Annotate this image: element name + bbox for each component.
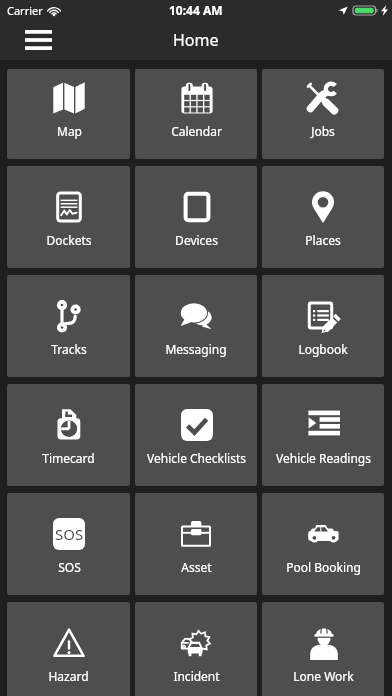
staticText: Vehicle Checklists xyxy=(147,450,246,466)
staticText: 10:44 AM xyxy=(169,2,223,18)
button[interactable]: SOS xyxy=(7,493,130,595)
button[interactable]: Calendar xyxy=(135,69,257,159)
button[interactable]: Incident xyxy=(135,602,257,696)
staticText: Hazard xyxy=(48,668,89,684)
button[interactable]: Tracks xyxy=(7,275,130,377)
staticText: Map xyxy=(57,123,82,139)
button[interactable]: Messaging xyxy=(135,275,257,377)
button[interactable]: Logbook xyxy=(262,275,384,377)
staticText: Pool Booking xyxy=(286,559,361,575)
staticText: Vehicle Readings xyxy=(276,450,371,466)
button[interactable]: Open navigation menu xyxy=(12,20,64,60)
staticText: Lone Work xyxy=(293,668,354,684)
button[interactable]: Jobs xyxy=(262,69,384,159)
button[interactable]: Places xyxy=(262,166,384,268)
staticText: Carrier xyxy=(7,3,43,18)
button[interactable]: Vehicle Readings xyxy=(262,384,384,486)
button[interactable]: Lone Work xyxy=(262,602,384,696)
button[interactable]: Timecard xyxy=(7,384,130,486)
staticText: Messaging xyxy=(165,341,227,357)
button[interactable]: Devices xyxy=(135,166,257,268)
staticText: Dockets xyxy=(46,232,92,248)
staticText: Logbook xyxy=(298,341,348,357)
button[interactable]: Hazard xyxy=(7,602,130,696)
button[interactable]: Asset xyxy=(135,493,257,595)
staticText: SOS xyxy=(55,524,84,544)
staticText: Places xyxy=(305,232,341,248)
staticText: SOS xyxy=(58,559,81,575)
staticText: Timecard xyxy=(42,450,95,466)
staticText: Tracks xyxy=(51,341,87,357)
staticText: Incident xyxy=(173,668,220,684)
button[interactable]: Pool Booking xyxy=(262,493,384,595)
staticText: Calendar xyxy=(171,123,222,139)
staticText: Devices xyxy=(175,232,218,248)
staticText: Home xyxy=(173,29,219,51)
staticText: Asset xyxy=(181,559,212,575)
button[interactable]: Vehicle Checklists xyxy=(135,384,257,486)
staticText: Jobs xyxy=(311,123,335,139)
button[interactable]: Map xyxy=(7,69,130,159)
button[interactable]: Dockets xyxy=(7,166,130,268)
